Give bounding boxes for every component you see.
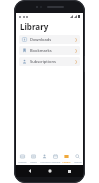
button[interactable]: Library	[61, 152, 72, 165]
staticText: Library	[20, 21, 49, 32]
button[interactable]: Search	[72, 152, 83, 165]
button[interactable]: Back	[25, 166, 35, 176]
staticText: Bookmarks	[30, 48, 52, 53]
staticText: Library	[62, 160, 71, 163]
button[interactable]: Bookmarks	[19, 46, 80, 55]
button[interactable]: Menu	[28, 152, 39, 165]
button[interactable]: Downloads	[19, 35, 80, 44]
button[interactable]: Movies	[16, 152, 28, 165]
staticText: Search	[74, 160, 82, 163]
staticText: Account	[40, 160, 50, 163]
staticText: Subscriptions	[30, 59, 56, 64]
button[interactable]: Account	[39, 152, 50, 165]
button[interactable]: Subscriptions	[19, 57, 80, 66]
button[interactable]: Home	[45, 166, 55, 176]
staticText: Downloads	[30, 37, 52, 42]
button[interactable]: Recent apps	[64, 166, 74, 176]
button[interactable]: Calendar	[50, 152, 61, 165]
staticText: Movies	[18, 160, 27, 163]
staticText: Menu	[30, 160, 37, 163]
staticText: Calendar	[50, 160, 61, 163]
